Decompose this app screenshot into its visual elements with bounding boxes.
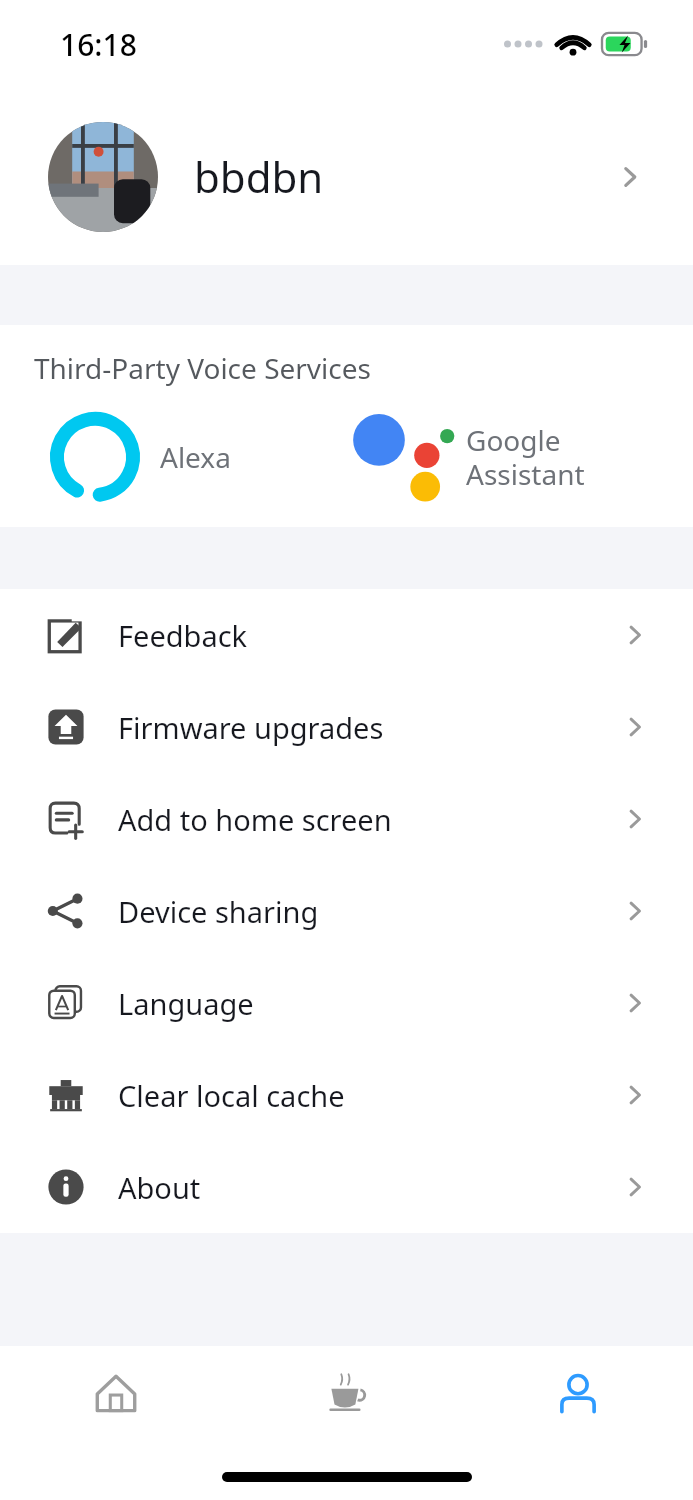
button[interactable]: Feedback bbox=[0, 589, 693, 681]
staticText: bbdbn bbox=[194, 148, 324, 205]
button[interactable]: bbdbn bbox=[0, 88, 693, 265]
button[interactable]: About bbox=[0, 1141, 693, 1233]
staticText: Google Assistant bbox=[466, 421, 585, 493]
button[interactable]: Google Assistant bbox=[346, 387, 693, 527]
button[interactable]: Add to home screen bbox=[0, 773, 693, 865]
staticText: Language bbox=[118, 984, 254, 1023]
staticText: Alexa bbox=[160, 438, 231, 476]
staticText: Firmware upgrades bbox=[118, 708, 384, 747]
staticText: 16:18 bbox=[60, 24, 137, 65]
button[interactable]: Firmware upgrades bbox=[0, 681, 693, 773]
button[interactable]: Coffee bbox=[231, 1346, 462, 1441]
button[interactable]: Language bbox=[0, 957, 693, 1049]
staticText: About bbox=[118, 1168, 201, 1207]
button[interactable]: Alexa bbox=[0, 387, 346, 527]
button[interactable]: Clear local cache bbox=[0, 1049, 693, 1141]
button[interactable]: Profile bbox=[462, 1346, 693, 1441]
staticText: Device sharing bbox=[118, 892, 319, 931]
staticText: Clear local cache bbox=[118, 1076, 345, 1115]
button[interactable]: Device sharing bbox=[0, 865, 693, 957]
button[interactable]: Home bbox=[0, 1346, 231, 1441]
staticText: Third-Party Voice Services bbox=[34, 349, 371, 387]
staticText: Feedback bbox=[118, 616, 248, 655]
staticText: Add to home screen bbox=[118, 800, 392, 839]
